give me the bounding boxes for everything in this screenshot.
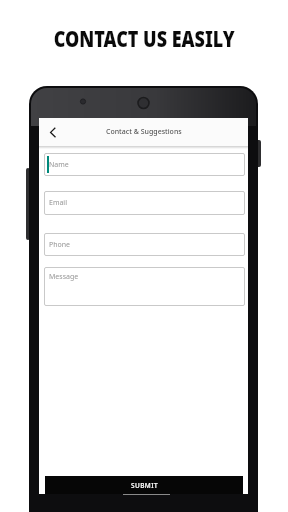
button[interactable]: Email [44,191,245,215]
staticText: Name [49,160,69,170]
button[interactable]: SUBMIT [45,476,243,494]
button[interactable]: Phone [44,233,245,256]
staticText: Contact & Suggestions [106,127,182,137]
staticText: CONTACT US EASILY [54,22,235,53]
button[interactable]: Message [44,267,245,306]
staticText: Email [49,198,67,208]
staticText: Phone [49,240,71,250]
staticText: Message [49,272,79,282]
button[interactable]: Name [44,153,245,176]
staticText: SUBMIT [131,481,158,490]
button[interactable] [39,118,63,146]
